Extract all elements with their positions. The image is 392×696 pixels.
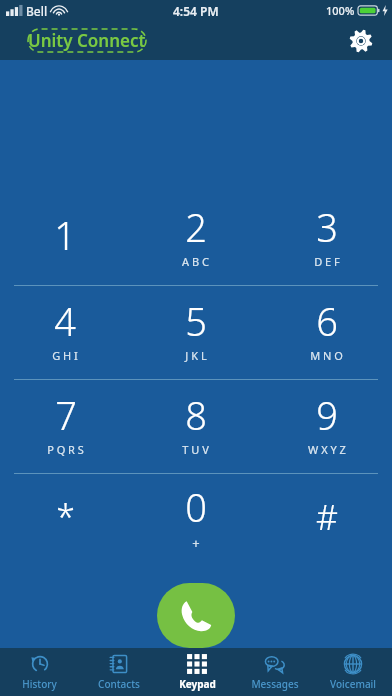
button[interactable]: 7 [0,380,130,473]
staticText: # [316,494,338,540]
staticText: Keypad [179,677,216,691]
button[interactable]: 3 [261,192,392,285]
staticText: Voicemail [330,677,376,691]
button[interactable]: * [0,474,130,567]
staticText: Bell [26,3,48,19]
staticText: 2 [185,201,207,253]
button[interactable]: Contacts [79,648,158,696]
staticText: 8 [185,389,207,441]
button[interactable]: 9 [261,380,392,473]
button[interactable]: 5 [130,286,261,379]
button[interactable]: Call [157,583,235,648]
staticText: M N O [310,348,343,363]
button[interactable]: Keypad [158,648,236,696]
staticText: History [22,677,57,691]
staticText: Unity Connect [28,29,146,52]
staticText: Messages [251,677,299,691]
staticText: A B C [182,254,209,269]
staticText: T U V [182,442,209,457]
staticText: 5 [185,295,207,347]
staticText: W X Y Z [308,442,346,457]
staticText: P Q R S [47,442,84,457]
staticText: 100% [326,3,355,18]
staticText: 3 [316,201,338,253]
button[interactable]: 8 [130,380,261,473]
staticText: 9 [316,389,338,441]
staticText: 4 [54,295,76,347]
button[interactable]: Unity Connect [17,26,157,55]
button[interactable]: 2 [130,192,261,285]
staticText: 7 [55,389,77,441]
staticText: * [56,494,75,540]
button[interactable]: History [0,648,79,696]
button[interactable]: Voicemail [314,648,392,696]
staticText: Contacts [98,677,140,691]
button[interactable]: # [261,474,392,567]
button[interactable]: Messages [236,648,314,696]
button[interactable]: Settings [344,24,378,58]
button[interactable]: 4 [0,286,130,379]
button[interactable]: 1 [0,192,130,285]
staticText: J K L [185,348,207,363]
staticText: 0 [185,481,207,533]
staticText: D E F [314,254,340,269]
button[interactable]: 6 [261,286,392,379]
staticText: 4:54 PM [173,3,219,19]
staticText: + [192,534,200,552]
staticText: 6 [316,295,338,347]
staticText: G H I [52,348,78,363]
staticText: 1 [54,209,76,261]
button[interactable]: 0 [130,474,261,567]
